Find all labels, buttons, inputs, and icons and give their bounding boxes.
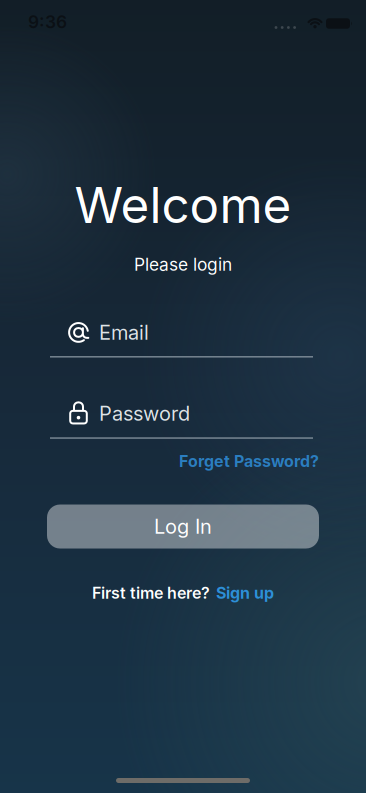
- button[interactable]: Sign up: [216, 583, 274, 602]
- staticText: First time here?: [92, 583, 210, 602]
- staticText: Please login: [134, 254, 232, 275]
- staticText: Sign up: [216, 583, 274, 602]
- staticText: Forget Password?: [179, 452, 319, 470]
- staticText: Password: [99, 402, 190, 425]
- staticText: Email: [99, 321, 149, 344]
- staticText: Log In: [154, 515, 212, 538]
- button[interactable]: Forget Password?: [179, 452, 319, 470]
- button[interactable]: Password: [50, 401, 313, 439]
- staticText: 9:36: [28, 12, 67, 32]
- button[interactable]: Email: [50, 321, 313, 357]
- staticText: Welcome: [74, 176, 291, 234]
- button[interactable]: Log In: [47, 504, 319, 548]
